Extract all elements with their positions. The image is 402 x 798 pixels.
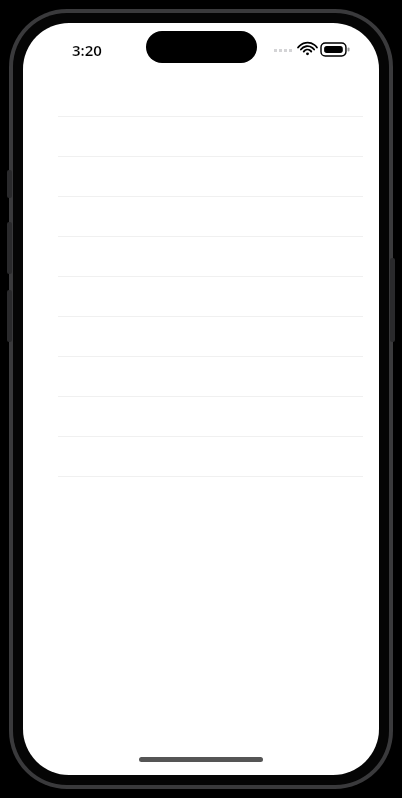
staticText: 3:20 [72,40,102,60]
